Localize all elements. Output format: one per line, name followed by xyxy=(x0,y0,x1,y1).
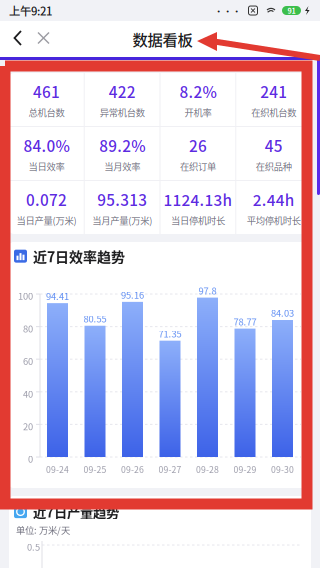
staticText: 95.313 xyxy=(97,188,147,210)
staticText: 84.03 xyxy=(271,306,294,319)
staticText: 78.77 xyxy=(233,315,256,328)
staticText: 总机台数 xyxy=(28,105,64,119)
staticText: 80.55 xyxy=(83,312,106,325)
staticText: 当日效率 xyxy=(28,159,64,173)
staticText: 71.35 xyxy=(158,327,181,340)
staticText: 94.41 xyxy=(46,289,69,303)
staticText: 当日产量(万米) xyxy=(16,213,76,227)
staticText: 461 xyxy=(33,80,60,102)
staticText: 09-24 xyxy=(46,463,69,475)
staticText: 45 xyxy=(265,134,283,156)
staticText: 开机率 xyxy=(184,105,211,119)
staticText: 在织机台数 xyxy=(251,105,296,119)
staticText: 在织订单 xyxy=(180,159,216,173)
staticText: 当月产量(万米) xyxy=(92,213,152,227)
staticText: 当日停机时长 xyxy=(171,213,225,227)
staticText: 0.072 xyxy=(26,188,67,210)
staticText: 当月效率 xyxy=(104,159,140,173)
button[interactable]: Back xyxy=(5,21,31,57)
staticText: 97.8 xyxy=(198,284,216,297)
staticText: 09-29 xyxy=(233,463,256,475)
staticText: 40 xyxy=(23,387,33,400)
staticText: 95.16 xyxy=(121,288,144,301)
staticText: 09-25 xyxy=(83,463,106,475)
staticText: 422 xyxy=(109,80,136,102)
staticText: 84.0% xyxy=(23,134,69,156)
staticText: 数据看板 xyxy=(132,28,192,50)
staticText: 09-27 xyxy=(158,463,181,475)
staticText: 100 xyxy=(18,289,33,302)
staticText: ••• xyxy=(214,4,241,17)
staticText: 平均停机时长 xyxy=(247,213,301,227)
staticText: 09-30 xyxy=(271,463,294,475)
staticText: 91 xyxy=(287,5,295,16)
staticText: 80 xyxy=(23,322,33,335)
staticText: 20 xyxy=(23,419,33,433)
staticText: 单位: 万米/天 xyxy=(16,523,70,536)
staticText: 60 xyxy=(23,354,33,368)
staticText: 09-26 xyxy=(121,463,144,475)
staticText: 近7日产量趋势 xyxy=(33,502,119,521)
staticText: 异常机台数 xyxy=(100,105,145,119)
staticText: 0.5 xyxy=(27,540,40,553)
staticText: 26 xyxy=(189,134,207,156)
staticText: 0 xyxy=(28,452,33,465)
staticText: 8.2% xyxy=(179,80,216,102)
staticText: 1124.13h xyxy=(163,188,232,210)
staticText: 上午9:21 xyxy=(9,2,52,19)
staticText: 2.44h xyxy=(253,188,295,210)
staticText: 近7日效率趋势 xyxy=(33,246,125,266)
staticText: 241 xyxy=(260,80,287,102)
staticText: 89.2% xyxy=(99,134,145,156)
staticText: 09-28 xyxy=(196,463,219,475)
button[interactable]: Close xyxy=(31,21,57,57)
staticText: 在织品种 xyxy=(256,159,292,173)
